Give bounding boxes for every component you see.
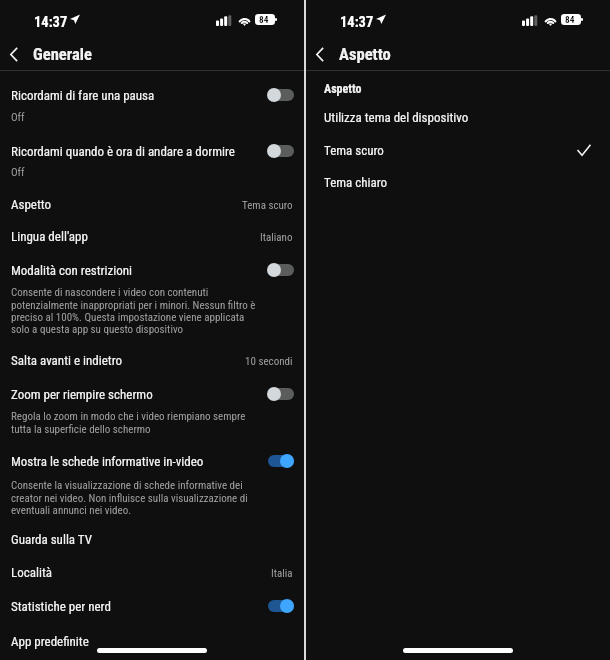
staticText: Aspetto — [11, 197, 52, 212]
button[interactable]: Ricordami di fare una pausa — [0, 81, 304, 111]
staticText: Guarda sulla TV — [11, 532, 92, 547]
button[interactable]: Indietro — [1, 35, 29, 63]
button[interactable]: Disattivato — [266, 142, 296, 160]
button[interactable]: Utilizza tema del dispositivo — [306, 102, 610, 132]
staticText: Zoom per riempire schermo — [11, 387, 153, 402]
button[interactable]: Ricordami quando è ora di andare a dormi… — [0, 137, 304, 167]
staticText: 10 secondi — [245, 355, 293, 368]
staticText: 14:37 — [34, 14, 68, 31]
staticText: Ricordami quando è ora di andare a dormi… — [11, 144, 235, 159]
staticText: Italiano — [260, 231, 293, 244]
staticText: Statistiche per nerd — [11, 599, 111, 614]
button[interactable]: Attivato — [266, 597, 296, 615]
button[interactable]: Lingua dell'app — [0, 222, 304, 252]
button[interactable]: App predefinite — [0, 627, 304, 657]
staticText: Generale — [33, 45, 92, 64]
button[interactable]: Aspetto — [0, 190, 304, 220]
staticText: Consente la visualizzazione di schede in… — [11, 479, 259, 516]
staticText: Località — [11, 565, 52, 580]
staticText: Lingua dell'app — [11, 229, 88, 244]
button[interactable]: Mostra le schede informative in-video — [0, 447, 304, 477]
button[interactable]: Tema chiaro — [306, 167, 610, 197]
button[interactable]: Guarda sulla TV — [0, 525, 304, 555]
button[interactable]: Disattivato — [266, 86, 296, 104]
other: Wi-Fi — [543, 14, 558, 25]
staticText: Tema chiaro — [324, 175, 388, 190]
staticText: Off — [11, 166, 25, 179]
staticText: Tema scuro — [324, 143, 384, 158]
staticText: Ricordami di fare una pausa — [11, 88, 155, 103]
staticText: Italia — [271, 567, 293, 580]
button[interactable]: Tema scuro — [306, 135, 610, 165]
button[interactable]: Indietro — [307, 35, 335, 63]
staticText: Utilizza tema del dispositivo — [324, 110, 469, 125]
staticText: Modalità con restrizioni — [11, 263, 133, 278]
staticText: Off — [11, 111, 25, 124]
staticText: Mostra le schede informative in-video — [11, 454, 204, 469]
staticText: Salta avanti e indietro — [11, 353, 123, 368]
button[interactable]: Disattivato — [266, 261, 296, 279]
staticText: 14:37 — [340, 14, 374, 31]
button[interactable]: Salta avanti e indietro — [0, 346, 304, 376]
other: Segnale — [216, 15, 231, 26]
staticText: Tema scuro — [242, 199, 293, 212]
staticText: Regola lo zoom in modo che i video riemp… — [11, 410, 259, 435]
button[interactable]: Statistiche per nerd — [0, 592, 304, 622]
other: Wi-Fi — [237, 14, 252, 25]
staticText: 84 — [259, 14, 269, 25]
staticText: Consente di nascondere i video con conte… — [11, 286, 259, 335]
button[interactable]: Località — [0, 558, 304, 588]
button[interactable]: Disattivato — [266, 385, 296, 403]
button[interactable]: Modalità con restrizioni — [0, 256, 304, 286]
staticText: Aspetto — [324, 82, 362, 96]
button[interactable]: Attivato — [266, 452, 296, 470]
staticText: App predefinite — [11, 634, 89, 649]
other: Segnale — [522, 15, 537, 26]
staticText: Aspetto — [339, 45, 391, 64]
button[interactable]: Zoom per riempire schermo — [0, 380, 304, 410]
staticText: 84 — [565, 14, 575, 25]
